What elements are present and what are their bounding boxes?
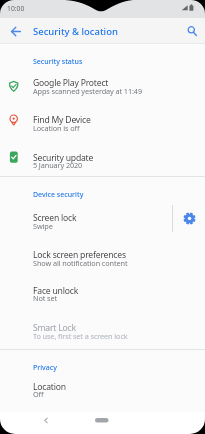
staticText: Apps scanned yesterday at 11:49 bbox=[33, 86, 142, 96]
staticText: Find My Device bbox=[33, 114, 91, 126]
button[interactable] bbox=[172, 203, 205, 240]
staticText: Security status bbox=[33, 57, 83, 67]
staticText: Not set bbox=[33, 293, 58, 303]
staticText: Show all notification content bbox=[33, 258, 128, 268]
button[interactable]: Face unlock bbox=[0, 277, 205, 313]
button[interactable]: Google Play Protect bbox=[0, 66, 205, 103]
staticText: Location bbox=[33, 381, 66, 393]
staticText: Screen lock bbox=[33, 212, 77, 224]
staticText: Smart Lock bbox=[33, 322, 76, 334]
button[interactable]: Location bbox=[0, 376, 205, 412]
staticText: 5 January 2020 bbox=[33, 160, 83, 170]
staticText: Security update bbox=[33, 152, 94, 164]
button[interactable]: Smart Lock bbox=[0, 313, 205, 349]
staticText: Google Play Protect bbox=[33, 77, 109, 89]
staticText: To use, first set a screen lock bbox=[33, 331, 128, 341]
button[interactable] bbox=[38, 413, 54, 429]
button[interactable] bbox=[8, 23, 25, 40]
button[interactable] bbox=[183, 22, 201, 40]
button[interactable]: Screen lock bbox=[0, 203, 172, 240]
button[interactable]: Lock screen preferences bbox=[0, 240, 205, 277]
staticText: 10:00 bbox=[7, 4, 25, 13]
staticText: Face unlock bbox=[33, 285, 79, 297]
staticText: Location is off bbox=[33, 123, 80, 133]
staticText: Device security bbox=[33, 190, 84, 200]
staticText: Lock screen preferences bbox=[33, 249, 126, 261]
button[interactable]: Security update bbox=[0, 140, 205, 177]
button[interactable]: Find My Device bbox=[0, 103, 205, 140]
staticText: Off bbox=[33, 389, 44, 399]
staticText: Privacy bbox=[33, 363, 57, 373]
button[interactable] bbox=[93, 413, 111, 429]
staticText: Security & location bbox=[33, 25, 118, 38]
staticText: Swipe bbox=[33, 221, 53, 231]
